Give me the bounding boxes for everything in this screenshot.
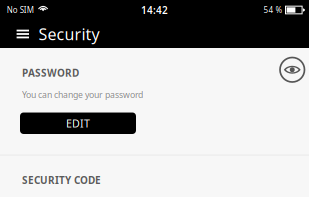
button[interactable]: Menu	[17, 20, 29, 48]
staticText: SECURITY CODE	[22, 173, 101, 187]
staticText: 14:42	[141, 3, 168, 17]
button[interactable]: Show password	[280, 57, 304, 82]
staticText: EDIT	[66, 116, 90, 130]
staticText: PASSWORD	[22, 66, 79, 80]
staticText: No SIM	[7, 5, 34, 15]
staticText: 54 %	[263, 5, 282, 15]
staticText: You can change your password	[22, 89, 143, 100]
button[interactable]: EDIT	[20, 112, 136, 134]
staticText: Security	[38, 23, 99, 45]
